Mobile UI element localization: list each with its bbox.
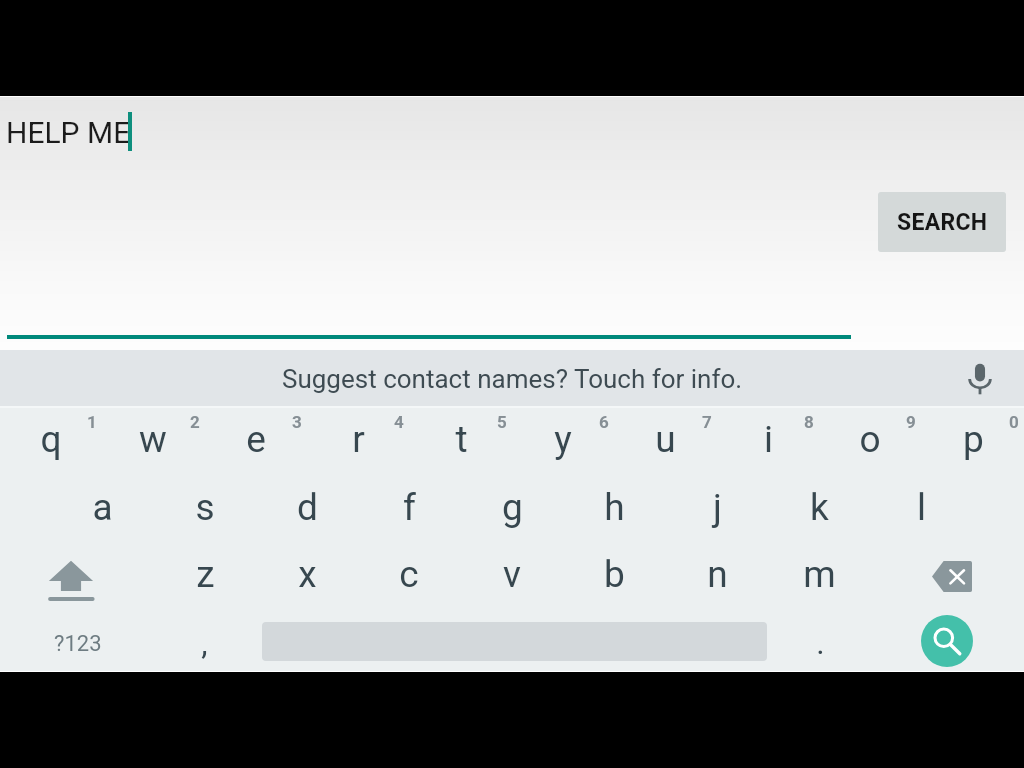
button[interactable]: ?123 xyxy=(27,610,129,677)
staticText: c xyxy=(399,553,419,596)
staticText: y xyxy=(554,418,572,461)
button[interactable]: t xyxy=(410,406,512,473)
staticText: 7 xyxy=(702,412,712,432)
button[interactable]: h xyxy=(563,474,665,541)
button[interactable]: e xyxy=(205,406,307,473)
button[interactable]: s xyxy=(154,474,256,541)
button[interactable]: v xyxy=(461,541,563,608)
staticText: n xyxy=(707,553,728,596)
staticText: r xyxy=(352,418,365,461)
staticText: p xyxy=(963,418,984,461)
button[interactable]: f xyxy=(358,474,460,541)
button[interactable]: p xyxy=(922,406,1024,473)
staticText: l xyxy=(917,486,926,529)
staticText: m xyxy=(803,553,836,596)
staticText: z xyxy=(196,553,215,596)
staticText: a xyxy=(92,486,113,529)
button[interactable]: Search query field xyxy=(7,96,851,336)
button[interactable]: g xyxy=(461,474,563,541)
staticText: t xyxy=(455,418,468,461)
button[interactable]: , xyxy=(153,618,255,668)
button[interactable]: w xyxy=(102,406,204,473)
staticText: i xyxy=(764,418,773,461)
staticText: d xyxy=(297,486,318,529)
staticText: 4 xyxy=(394,412,404,432)
button[interactable]: k xyxy=(768,474,870,541)
button[interactable]: a xyxy=(51,474,153,541)
button[interactable]: Shift xyxy=(20,545,122,612)
staticText: HELP ME xyxy=(6,115,131,150)
staticText: u xyxy=(655,418,676,461)
staticText: 2 xyxy=(190,412,200,432)
staticText: s xyxy=(195,486,215,529)
button[interactable]: m xyxy=(768,541,870,608)
button[interactable]: o xyxy=(819,406,921,473)
staticText: h xyxy=(604,486,625,529)
staticText: 5 xyxy=(497,412,507,432)
button[interactable]: r xyxy=(307,406,409,473)
staticText: 9 xyxy=(906,412,916,432)
staticText: x xyxy=(298,553,317,596)
staticText: 0 xyxy=(1009,412,1019,432)
staticText: SEARCH xyxy=(897,209,988,236)
staticText: v xyxy=(503,553,521,596)
button[interactable]: q xyxy=(0,406,102,473)
staticText: w xyxy=(139,418,167,461)
button[interactable]: i xyxy=(717,406,819,473)
staticText: 3 xyxy=(292,412,302,432)
button[interactable]: Backspace xyxy=(901,545,1003,612)
button[interactable]: SEARCH xyxy=(878,192,1006,252)
staticText: e xyxy=(246,418,266,461)
staticText: k xyxy=(810,486,829,529)
staticText: o xyxy=(859,418,881,461)
staticText: ?123 xyxy=(54,631,102,657)
staticText: g xyxy=(502,486,523,529)
staticText: Suggest contact names? Touch for info. xyxy=(282,364,743,394)
button[interactable]: Voice input xyxy=(957,356,1003,402)
button[interactable]: z xyxy=(154,541,256,608)
button[interactable]: d xyxy=(256,474,358,541)
button[interactable]: u xyxy=(614,406,716,473)
staticText: 1 xyxy=(87,412,97,432)
staticText: b xyxy=(604,553,625,596)
staticText: , xyxy=(201,624,208,662)
button[interactable]: . xyxy=(769,618,871,668)
staticText: j xyxy=(713,486,722,529)
button[interactable]: Suggest contact names? Touch for info. xyxy=(0,350,1024,406)
staticText: 6 xyxy=(599,412,609,432)
button[interactable]: l xyxy=(870,474,972,541)
button[interactable]: y xyxy=(512,406,614,473)
button[interactable]: j xyxy=(666,474,768,541)
staticText: f xyxy=(403,486,416,529)
staticText: q xyxy=(40,418,62,461)
button[interactable]: Search xyxy=(921,615,973,667)
button[interactable]: n xyxy=(666,541,768,608)
staticText: 8 xyxy=(804,412,814,432)
button[interactable]: x xyxy=(256,541,358,608)
staticText: . xyxy=(816,624,825,662)
button[interactable]: c xyxy=(358,541,460,608)
button[interactable]: b xyxy=(563,541,665,608)
